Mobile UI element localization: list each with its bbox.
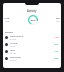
staticText: Yoga <box>10 49 15 52</box>
staticText: 30 min <box>10 52 17 55</box>
staticText: steps <box>5 20 10 23</box>
staticText: +4% <box>54 50 59 53</box>
button[interactable]: Swimming <box>3 55 61 62</box>
staticText: -12% <box>54 36 59 39</box>
staticText: Recent <box>5 30 14 33</box>
staticText: 12 km <box>10 45 16 48</box>
button[interactable]: Morning Run <box>3 34 61 41</box>
staticText: Cycling <box>10 42 18 45</box>
button[interactable]: Yoga <box>3 48 61 55</box>
staticText: Activity <box>27 9 37 13</box>
staticText: +6% <box>54 57 59 60</box>
staticText: Morning Run <box>10 35 24 38</box>
staticText: +8% <box>54 43 59 46</box>
staticText: 320 <box>56 17 60 20</box>
button[interactable]: Cycling <box>3 41 61 48</box>
staticText: 800 m <box>10 59 16 62</box>
staticText: kcal <box>56 20 60 23</box>
staticText: Swimming <box>10 56 21 59</box>
staticText: 1248 <box>4 17 10 20</box>
staticText: 68% <box>31 19 36 22</box>
staticText: 5.2 km <box>10 38 16 41</box>
